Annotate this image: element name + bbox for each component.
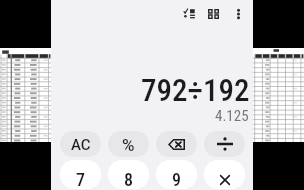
button[interactable]: AC bbox=[60, 131, 101, 157]
staticText: 792÷192 bbox=[141, 72, 250, 108]
staticText: AC bbox=[71, 136, 91, 154]
button[interactable]: More options bbox=[228, 4, 248, 24]
staticText: 9 bbox=[172, 169, 181, 189]
staticText: 7 bbox=[76, 169, 85, 189]
staticText: 8 bbox=[124, 169, 133, 189]
button[interactable]: 7 bbox=[60, 160, 101, 189]
button[interactable] bbox=[204, 131, 245, 157]
button[interactable]: Keypad layout bbox=[203, 4, 223, 24]
staticText: % bbox=[122, 135, 135, 155]
button[interactable]: % bbox=[108, 131, 149, 157]
button[interactable]: Scientific mode bbox=[179, 4, 199, 24]
button[interactable] bbox=[204, 160, 245, 189]
button[interactable]: 8 bbox=[108, 160, 149, 189]
button[interactable]: 9 bbox=[156, 160, 197, 189]
button[interactable] bbox=[156, 131, 197, 157]
staticText: 4.125 bbox=[215, 107, 249, 125]
